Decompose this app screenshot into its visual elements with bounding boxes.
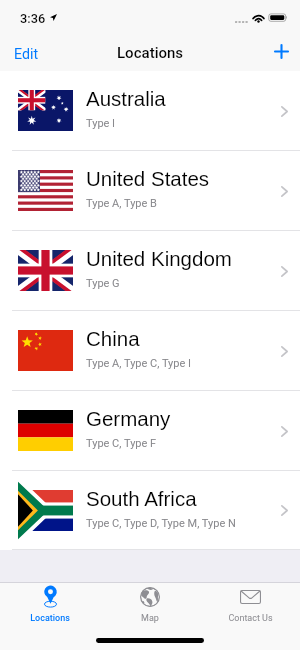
staticText: China [86,327,140,350]
button[interactable]: Australia [0,71,300,151]
button[interactable]: United Kingdom [0,231,300,311]
staticText: Type A, Type B [86,197,157,210]
button[interactable]: Germany [0,391,300,471]
staticText: South Africa [86,487,197,510]
staticText: Locations [117,44,184,62]
staticText: Germany [86,407,171,430]
staticText: Type C, Type D, Type M, Type N [86,517,236,530]
staticText: United States [86,167,210,190]
button[interactable]: South Africa [0,471,300,550]
staticText: Type G [86,277,120,290]
staticText: Locations [30,613,70,624]
button[interactable]: Edit [6,40,47,69]
button[interactable]: Map [100,583,200,650]
button[interactable]: Locations [0,583,100,650]
staticText: Contact Us [228,613,273,624]
staticText: Type C, Type F [86,437,157,450]
button[interactable]: United States [0,151,300,231]
staticText: Type A, Type C, Type I [86,357,192,370]
staticText: Type I [86,117,116,130]
button[interactable]: China [0,311,300,391]
staticText: Australia [86,87,166,110]
staticText: Map [141,613,159,624]
staticText: 3:36 [20,11,46,26]
staticText: United Kingdom [86,247,232,270]
button[interactable]: Add location [268,38,300,64]
staticText: Edit [14,46,39,63]
button[interactable]: Contact Us [200,583,300,650]
